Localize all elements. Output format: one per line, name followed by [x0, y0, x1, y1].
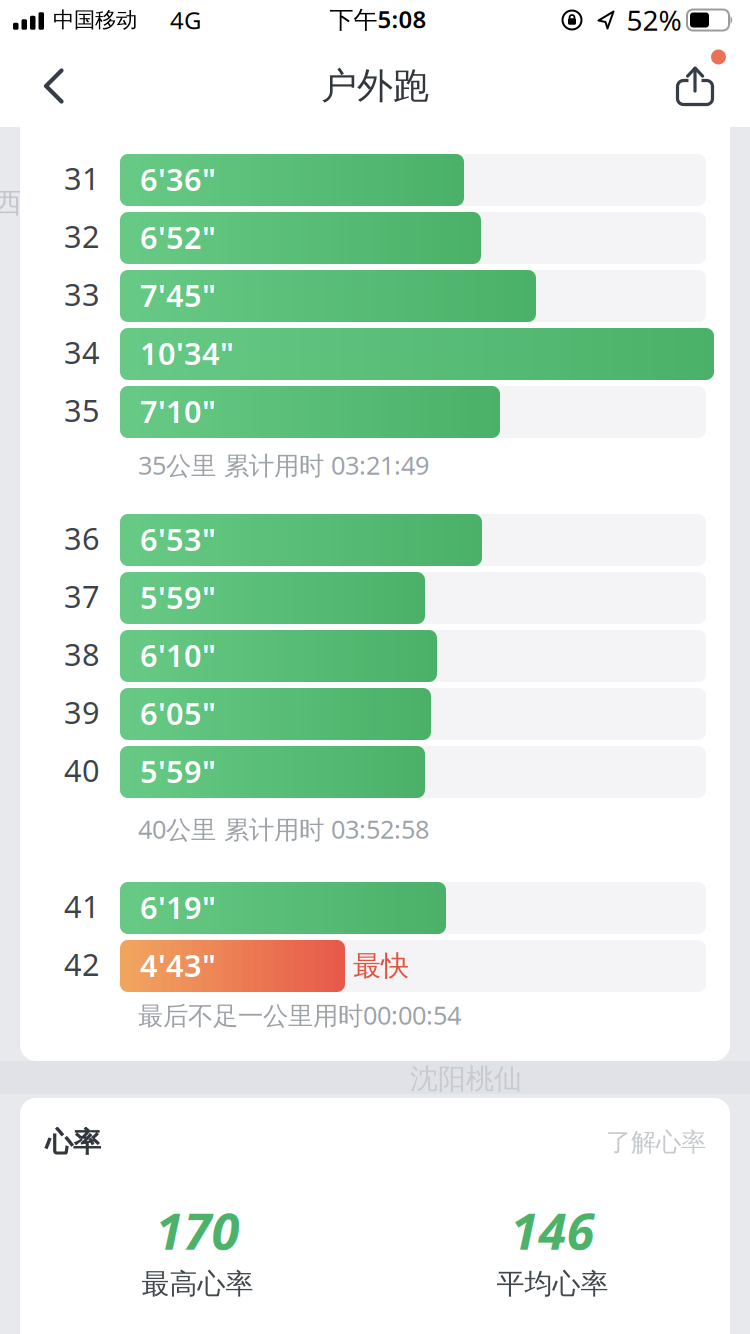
staticText: 146 [510, 1196, 594, 1264]
staticText: 52% [626, 1, 681, 39]
button[interactable]: Share [675, 63, 715, 107]
staticText: 42 [64, 944, 100, 984]
staticText: 5'59" [140, 751, 216, 791]
button[interactable]: Back [37, 65, 71, 106]
staticText: 了解心率 [606, 1127, 706, 1158]
staticText: 4G [170, 4, 201, 36]
staticText: 40 [64, 750, 100, 790]
staticText: 40公里 累计用时 03:52:58 [138, 812, 429, 846]
staticText: 心率 [45, 1125, 101, 1159]
button[interactable]: 了解心率 [606, 1127, 706, 1158]
staticText: 5'59" [140, 577, 216, 617]
staticText: 33 [64, 274, 100, 314]
staticText: 35公里 累计用时 03:21:49 [138, 448, 429, 482]
staticText: 6'36" [140, 159, 216, 199]
staticText: 10'34" [140, 333, 234, 373]
staticText: 36 [64, 518, 100, 558]
staticText: 中国移动 [53, 7, 137, 33]
staticText: 6'53" [140, 519, 216, 559]
staticText: 41 [64, 886, 100, 926]
staticText: 最快 [353, 949, 409, 983]
staticText: 6'10" [140, 635, 216, 675]
staticText: 6'52" [140, 217, 216, 257]
staticText: 最后不足一公里用时00:00:54 [138, 998, 461, 1032]
staticText: 37 [64, 576, 100, 616]
staticText: 31 [64, 158, 100, 198]
staticText: 170 [155, 1196, 239, 1264]
staticText: 38 [64, 634, 100, 674]
staticText: 户外跑 [321, 64, 429, 108]
staticText: 最高心率 [141, 1267, 253, 1301]
staticText: 32 [64, 216, 100, 256]
staticText: 6'19" [140, 887, 216, 927]
staticText: 7'45" [140, 275, 216, 315]
staticText: 6'05" [140, 693, 216, 733]
staticText: 35 [64, 390, 100, 430]
staticText: 4'43" [140, 945, 216, 985]
staticText: 39 [64, 692, 100, 732]
staticText: 下午5:08 [329, 3, 426, 35]
staticText: 平均心率 [496, 1267, 608, 1301]
staticText: 7'10" [140, 391, 216, 431]
staticText: 西 [0, 186, 22, 220]
staticText: 沈阳桃仙 [410, 1062, 522, 1096]
staticText: 34 [64, 332, 100, 372]
